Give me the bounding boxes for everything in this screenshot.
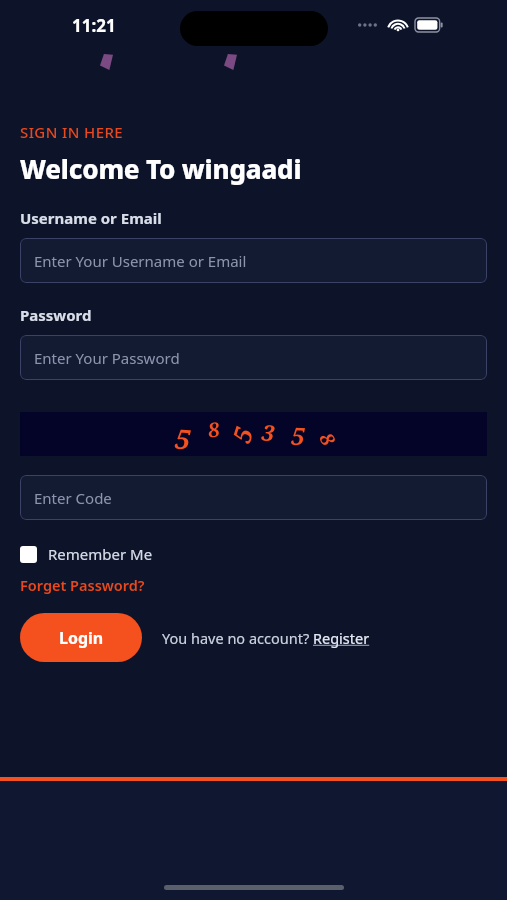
button[interactable]: Forget Password? [20, 575, 145, 595]
button[interactable]: Login [20, 613, 142, 662]
staticText: Password [20, 305, 92, 325]
staticText: 11:21 [72, 14, 116, 37]
staticText: Forget Password? [20, 575, 145, 595]
staticText: Enter Your Username or Email [34, 251, 247, 271]
other: Captcha code image [20, 412, 487, 456]
staticText: SIGN IN HERE [20, 122, 124, 142]
staticText: Username or Email [20, 208, 162, 228]
staticText: Enter Code [34, 488, 112, 508]
staticText: 8 [313, 428, 341, 450]
staticText: 8 [206, 415, 222, 444]
staticText: Enter Your Password [34, 348, 180, 368]
staticText: Remember Me [48, 544, 153, 564]
staticText: 5 [290, 419, 305, 452]
button[interactable]: Enter Code [20, 475, 487, 520]
staticText: You have no account? [162, 628, 313, 648]
button[interactable]: Register [313, 628, 370, 648]
button[interactable]: Remember Me [20, 544, 153, 564]
staticText: 3 [260, 416, 277, 448]
staticText: Login [59, 627, 104, 649]
button[interactable]: Enter Your Username or Email [20, 238, 487, 283]
staticText: 5 [224, 423, 260, 447]
staticText: Register [313, 628, 370, 648]
button[interactable]: Enter Your Password [20, 335, 487, 380]
staticText: 5 [174, 419, 192, 457]
staticText: Welcome To wingaadi [20, 151, 302, 186]
